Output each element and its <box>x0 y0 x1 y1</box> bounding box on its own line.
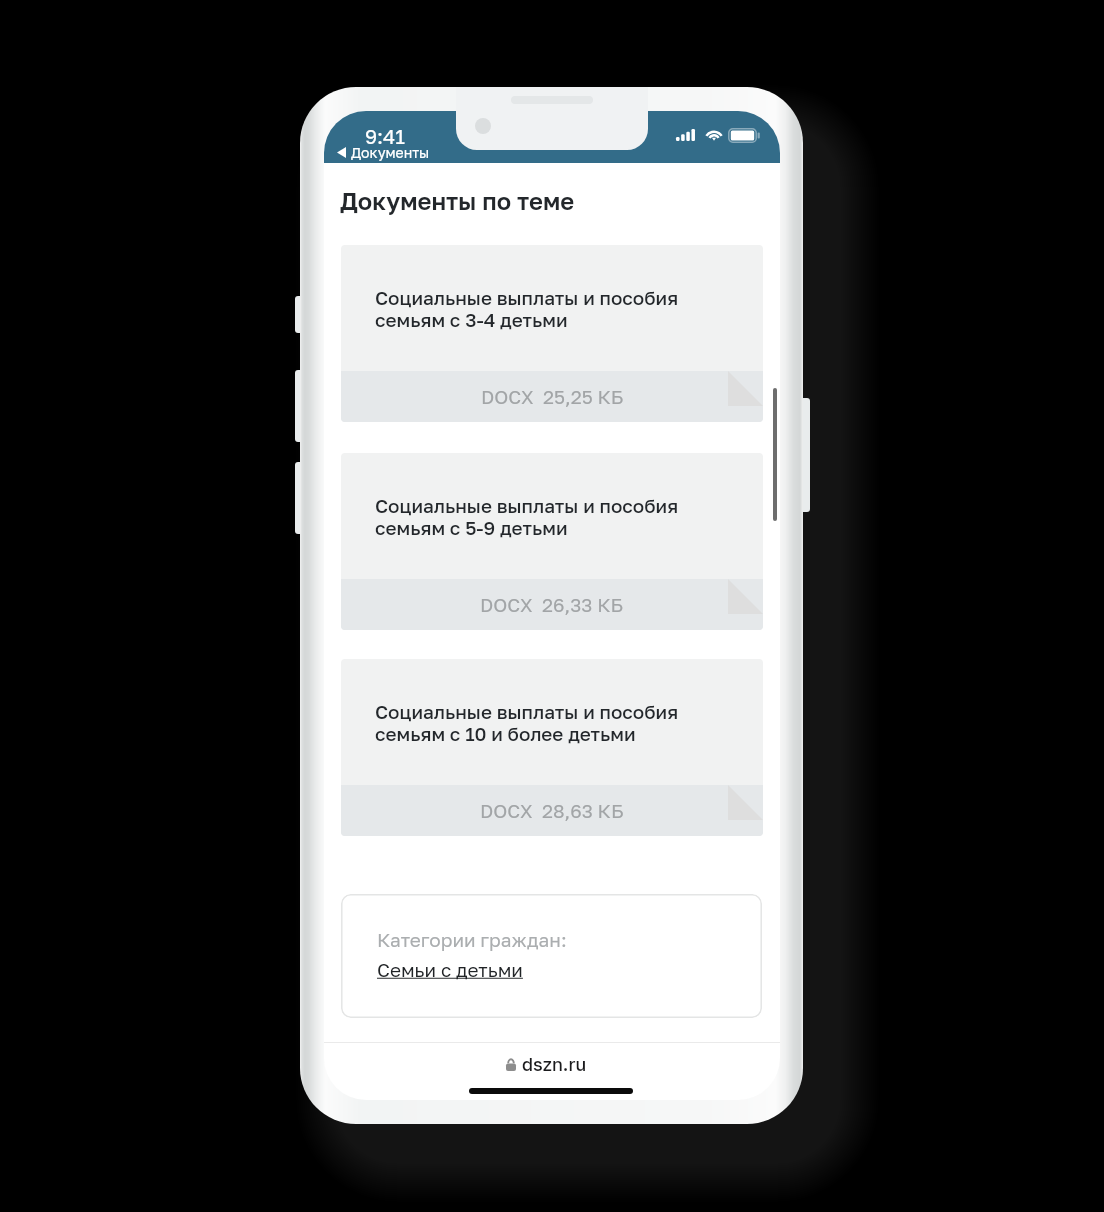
staticText: Семьи с детьми <box>377 958 523 981</box>
staticText: DOCX 25,25 КБ <box>481 385 624 408</box>
button[interactable]: Назад: Документы <box>337 144 430 161</box>
staticText: DOCX 26,33 КБ <box>480 593 624 616</box>
button[interactable]: dszn.ru <box>324 1051 774 1077</box>
staticText: 9:41 <box>365 124 405 148</box>
staticText: Документы по теме <box>340 186 575 215</box>
staticText: Документы <box>351 144 430 161</box>
staticText: Категории граждан: <box>377 928 567 951</box>
staticText: dszn.ru <box>522 1053 587 1075</box>
button[interactable]: Социальные выплаты и пособия семьям с 3-… <box>341 245 763 422</box>
button[interactable]: Семьи с детьми <box>377 958 523 981</box>
button[interactable]: Социальные выплаты и пособия семьям с 5-… <box>341 453 763 630</box>
staticText: Социальные выплаты и пособия семьям с 5-… <box>375 494 679 539</box>
button[interactable]: Категории граждан: <box>341 894 762 1018</box>
staticText: Социальные выплаты и пособия семьям с 10… <box>375 700 679 745</box>
staticText: Социальные выплаты и пособия семьям с 3-… <box>375 286 679 331</box>
staticText: DOCX 28,63 КБ <box>480 799 624 822</box>
button[interactable]: Социальные выплаты и пособия семьям с 10… <box>341 659 763 836</box>
